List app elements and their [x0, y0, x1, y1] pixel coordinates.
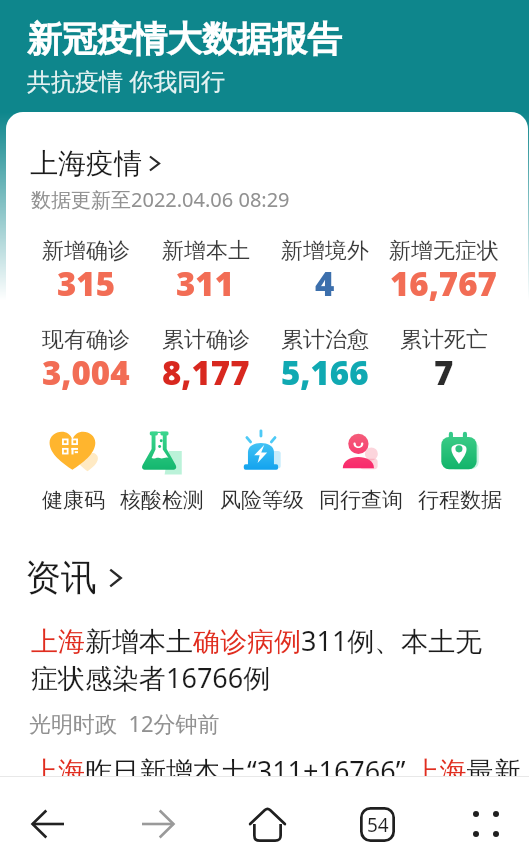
staticText: 数据更新至2022.04.06 08:29 [31, 186, 290, 213]
button[interactable]: 上海疫情 [30, 146, 167, 181]
button[interactable]: Forward [130, 802, 186, 846]
staticText: 4 [315, 261, 335, 306]
staticText: 风险等级 [220, 487, 304, 513]
staticText: 上海昨日新增本土“311+16766” 上海最新通报 [31, 752, 529, 789]
button[interactable]: 上海新增本土确诊病例311例、本土无症状感染者16766例 [0, 622, 529, 696]
staticText: 行程数据 [418, 487, 502, 513]
staticText: 上海疫情 [30, 146, 142, 181]
button[interactable]: 16,767 [384, 261, 503, 306]
staticText: 现有确诊 [42, 326, 130, 354]
staticText: 核酸检测 [120, 487, 204, 513]
staticText: 光明时政 12分钟前 [29, 708, 220, 738]
button[interactable]: 健康码 [42, 427, 105, 513]
button[interactable]: 7 [384, 350, 503, 395]
button[interactable]: Menu [458, 802, 514, 846]
staticText: 7 [434, 350, 454, 395]
button[interactable]: 风险等级 [220, 427, 304, 513]
button[interactable]: 3,004 [26, 350, 146, 395]
staticText: 资讯 [25, 555, 97, 600]
button[interactable]: 资讯 [25, 555, 129, 600]
button[interactable]: Home [239, 802, 295, 846]
staticText: 3,004 [42, 350, 130, 395]
staticText: 新增境外 [281, 237, 369, 265]
staticText: 5,166 [281, 350, 369, 395]
staticText: 8,177 [162, 350, 250, 395]
button[interactable]: 311 [146, 261, 265, 306]
button[interactable]: Tabs [349, 802, 405, 846]
staticText: 累计确诊 [162, 326, 250, 354]
button[interactable]: 行程数据 [418, 427, 502, 513]
staticText: 累计死亡 [400, 326, 488, 354]
button[interactable]: 同行查询 [319, 427, 403, 513]
staticText: 健康码 [42, 487, 105, 513]
staticText: 16,767 [390, 261, 497, 306]
staticText: 54 [367, 812, 389, 838]
staticText: 共抗疫情 你我同行 [27, 64, 226, 97]
staticText: 同行查询 [319, 487, 403, 513]
button[interactable]: Back [20, 802, 76, 846]
button[interactable]: 5,166 [265, 350, 384, 395]
button[interactable]: 315 [26, 261, 146, 306]
staticText: 新增本土 [162, 237, 250, 265]
staticText: 新增确诊 [42, 237, 130, 265]
staticText: 上海新增本土确诊病例311例、本土无症状感染者16766例 [31, 622, 496, 696]
staticText: 新增无症状 [389, 237, 499, 265]
button[interactable]: 4 [265, 261, 384, 306]
staticText: 315 [57, 261, 116, 306]
staticText: 累计治愈 [281, 326, 369, 354]
button[interactable]: 上海昨日新增本土“311+16766” 上海最新通报 [0, 752, 529, 789]
staticText: 311 [176, 261, 235, 306]
button[interactable]: 8,177 [146, 350, 265, 395]
staticText: 新冠疫情大数据报告 [27, 17, 342, 61]
button[interactable]: 核酸检测 [120, 427, 204, 513]
